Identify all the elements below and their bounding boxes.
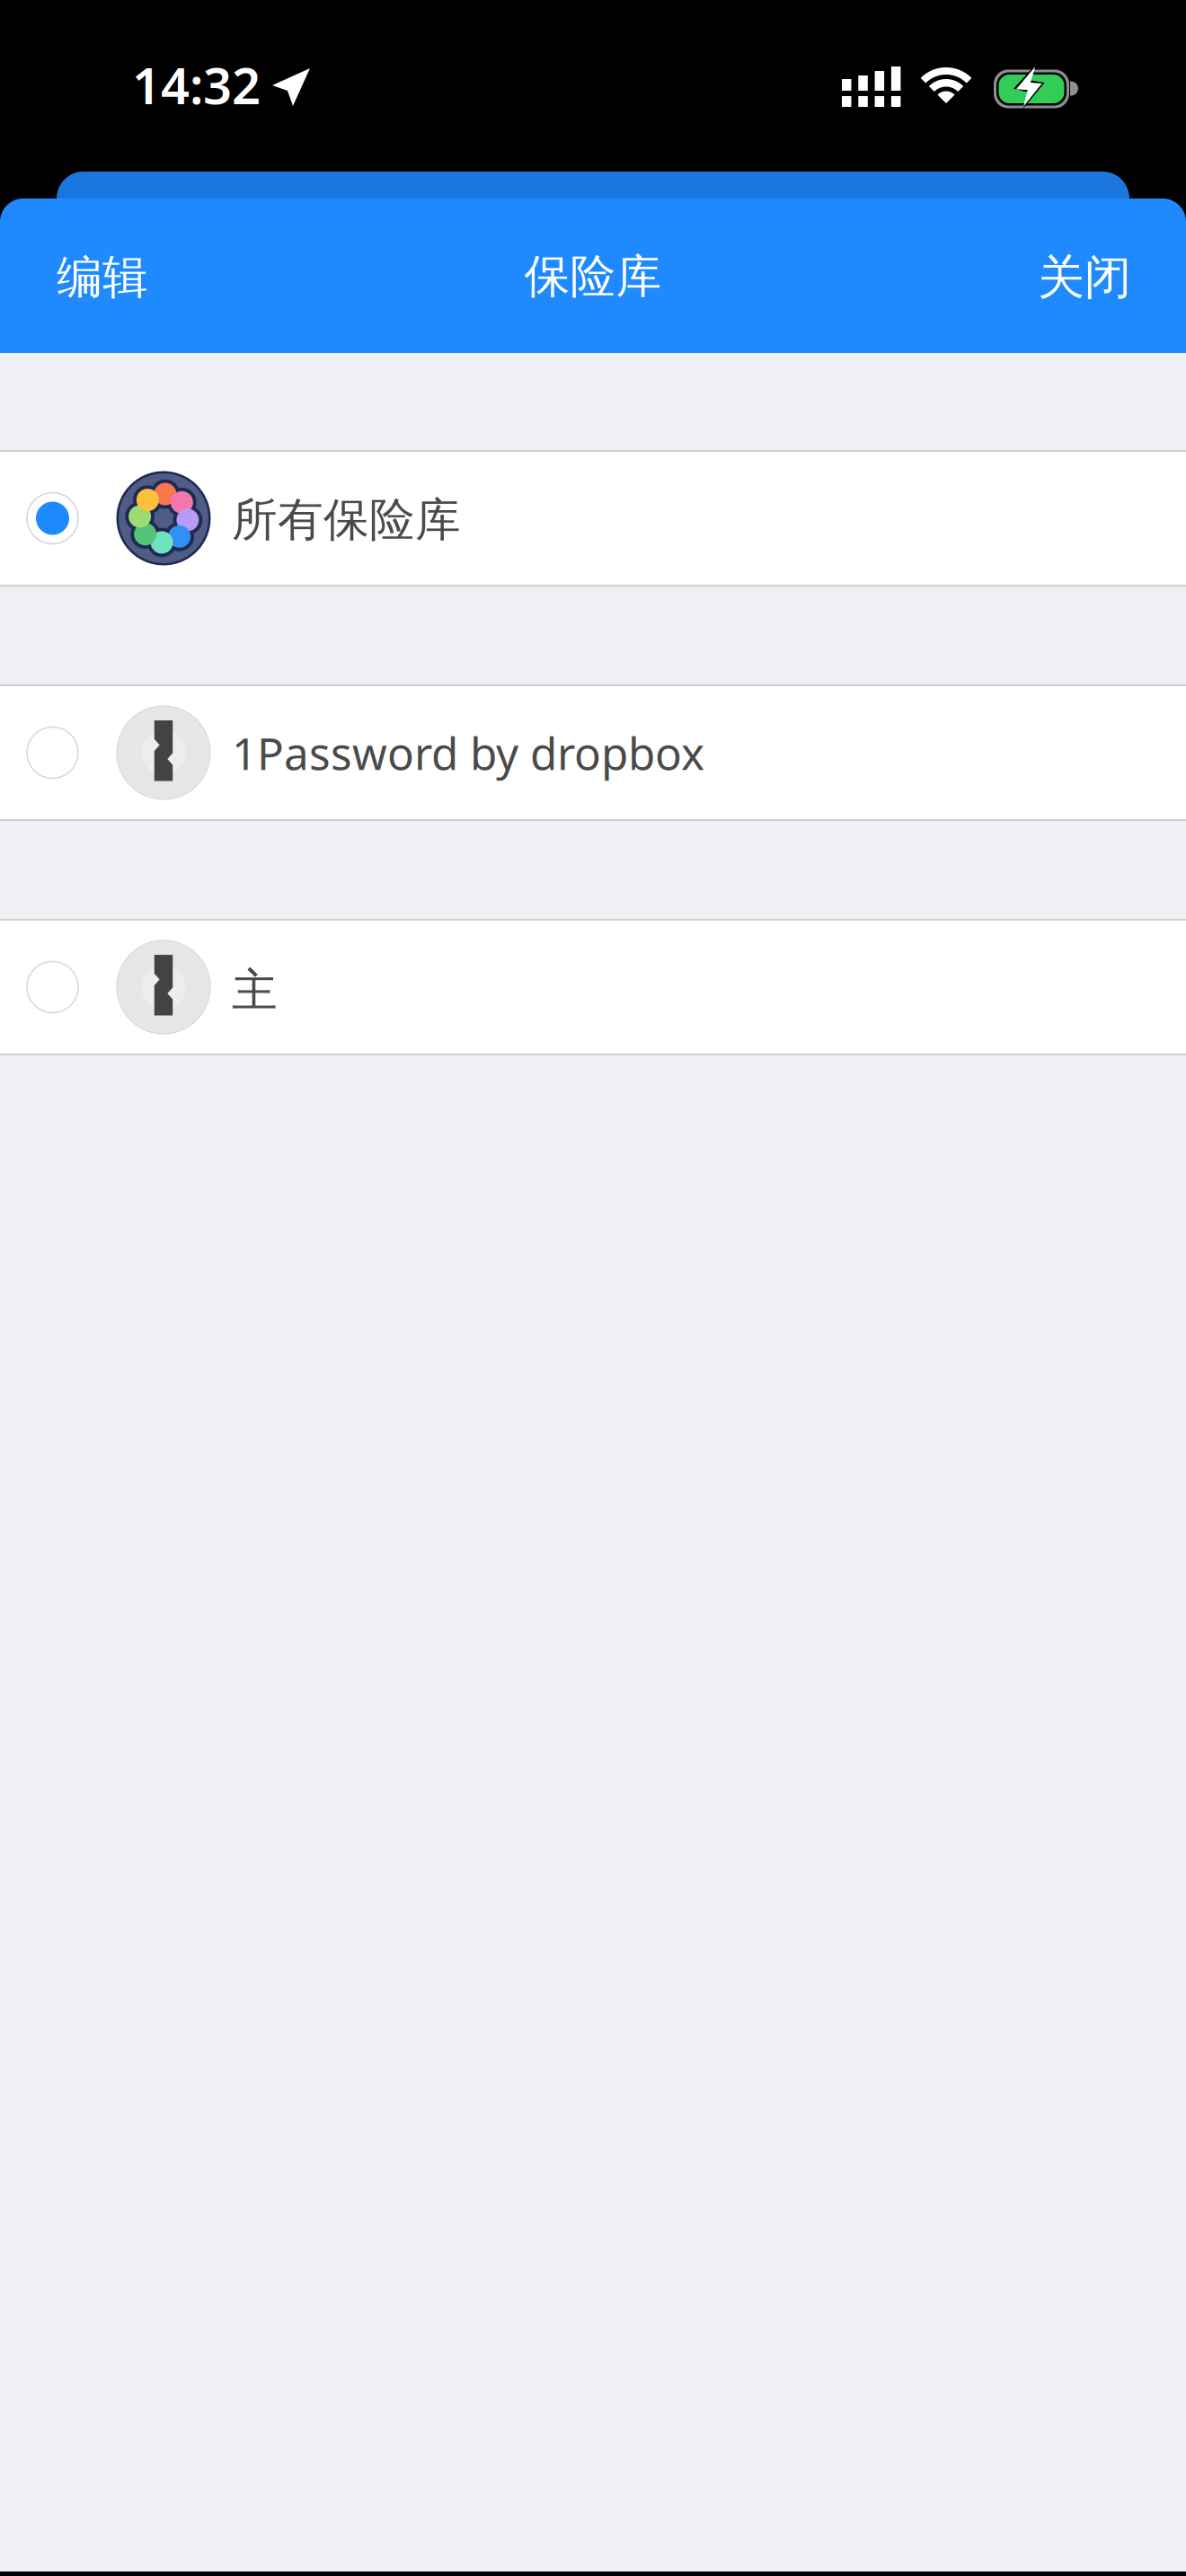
staticText: 所有保险库 (232, 492, 461, 548)
button[interactable]: 1Password by dropbox (0, 684, 1186, 821)
staticText: 编辑 (57, 250, 148, 305)
button[interactable]: 所有保险库 (0, 450, 1186, 587)
button[interactable]: 编辑 (57, 226, 175, 325)
staticText: 保险库 (524, 249, 662, 305)
button[interactable]: 关闭 (1011, 226, 1131, 326)
staticText: 关闭 (1038, 249, 1131, 306)
staticText: 1Password by dropbox (232, 723, 704, 782)
staticText: 主 (232, 963, 278, 1019)
staticText: 14:32 (132, 51, 261, 118)
button[interactable]: 主 (0, 919, 1186, 1055)
